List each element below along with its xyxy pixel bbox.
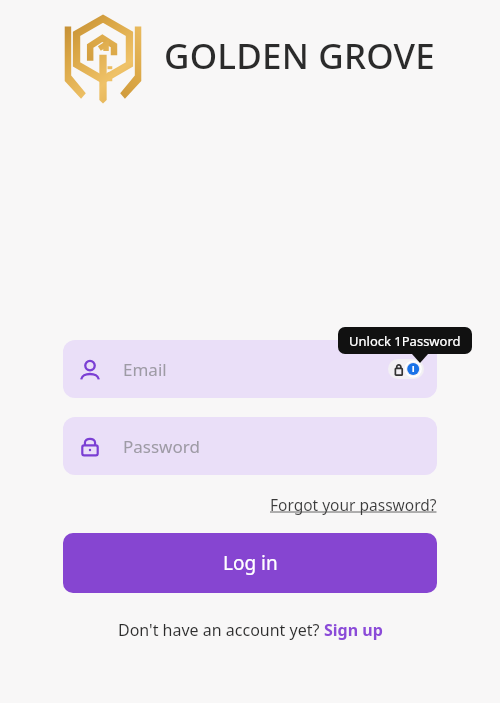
button[interactable]: Sign up: [324, 619, 383, 641]
button[interactable]: Log in: [63, 533, 437, 593]
button[interactable]: Forgot your password?: [270, 494, 437, 515]
staticText: GOLDEN GROVE: [164, 32, 435, 80]
staticText: Sign up: [324, 619, 383, 641]
staticText: Password: [123, 435, 200, 458]
staticText: Log in: [223, 550, 278, 576]
button[interactable]: Password: [63, 417, 437, 475]
staticText: Don't have an account yet?: [118, 619, 324, 641]
staticText: Unlock 1Password: [349, 332, 461, 350]
button[interactable]: Email: [63, 340, 437, 398]
button[interactable]: Unlock 1Password: [388, 359, 424, 379]
staticText: Forgot your password?: [270, 494, 437, 515]
staticText: Email: [123, 358, 167, 381]
